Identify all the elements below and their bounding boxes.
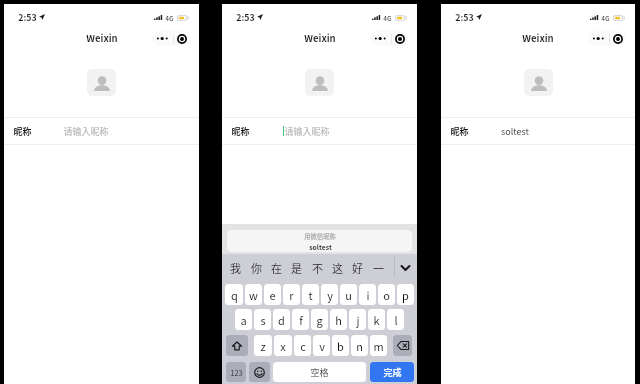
staticText: v [319, 338, 325, 354]
button[interactable]: f [292, 309, 309, 330]
button[interactable]: Backspace [393, 335, 412, 356]
button[interactable]: m [370, 335, 387, 356]
staticText: r [289, 287, 294, 303]
button[interactable]: l [387, 309, 404, 330]
button[interactable]: 123 [226, 362, 246, 382]
button[interactable]: i [359, 284, 376, 305]
staticText: 完成 [383, 366, 402, 379]
staticText: p [402, 287, 409, 303]
button[interactable]: u [340, 284, 357, 305]
button[interactable]: 你 [246, 255, 266, 280]
button[interactable]: g [311, 309, 328, 330]
staticText: 你 [251, 260, 262, 276]
staticText: a [240, 312, 247, 328]
staticText: Weixin [522, 31, 554, 45]
staticText: n [356, 338, 363, 354]
button[interactable]: Avatar [524, 69, 553, 96]
button[interactable]: b [332, 335, 349, 356]
staticText: j [356, 312, 360, 328]
button[interactable]: 用微信昵称 [227, 230, 412, 252]
button[interactable]: e [264, 284, 281, 305]
staticText: g [316, 312, 323, 328]
button[interactable]: k [368, 309, 385, 330]
button[interactable]: Avatar [87, 69, 116, 96]
staticText: w [249, 287, 258, 303]
staticText: 这 [332, 260, 343, 276]
button[interactable]: z [254, 335, 272, 356]
staticText: 2:53 [455, 11, 474, 24]
button[interactable]: c [294, 335, 311, 356]
staticText: z [260, 338, 266, 354]
button[interactable]: 空格 [273, 362, 366, 382]
staticText: d [278, 312, 285, 328]
button[interactable]: 这 [327, 255, 347, 280]
button[interactable]: Shift [226, 335, 248, 356]
button[interactable]: r [283, 284, 300, 305]
button[interactable]: s [254, 309, 271, 330]
button[interactable]: n [351, 335, 368, 356]
staticText: 用微信昵称 [304, 232, 336, 241]
button[interactable]: 一 [368, 255, 388, 280]
staticText: 昵称 [231, 125, 250, 138]
staticText: f [299, 312, 303, 328]
button[interactable]: Hide keyboard [396, 255, 414, 280]
button[interactable]: q [225, 284, 243, 305]
button[interactable]: x [274, 335, 292, 356]
button[interactable]: y [321, 284, 338, 305]
staticText: u [345, 287, 352, 303]
staticText: 2:53 [18, 11, 37, 24]
staticText: 我 [230, 260, 241, 276]
button[interactable]: 昵称 [4, 118, 199, 144]
button[interactable]: v [313, 335, 330, 356]
staticText: 请输入昵称 [284, 125, 330, 138]
button[interactable]: Menu and Close [152, 31, 190, 46]
staticText: t [308, 287, 313, 303]
staticText: 好 [352, 260, 363, 276]
button[interactable]: d [273, 309, 290, 330]
button[interactable]: Menu and Close [370, 31, 408, 46]
button[interactable]: 昵称 [441, 118, 635, 144]
button[interactable]: Avatar [305, 69, 334, 96]
button[interactable]: w [245, 284, 262, 305]
staticText: 123 [230, 367, 243, 378]
button[interactable]: p [397, 284, 414, 305]
button[interactable]: 是 [286, 255, 306, 280]
staticText: 昵称 [13, 125, 32, 138]
staticText: h [335, 312, 342, 328]
staticText: c [300, 338, 306, 354]
staticText: 一 [373, 260, 384, 276]
staticText: i [366, 287, 370, 303]
staticText: 是 [291, 260, 302, 276]
button[interactable]: t [302, 284, 319, 305]
staticText: x [280, 338, 286, 354]
staticText: s [260, 312, 266, 328]
button[interactable]: 好 [347, 255, 367, 280]
staticText: 2:53 [236, 11, 255, 24]
button[interactable]: Menu and Close [588, 31, 626, 46]
button[interactable]: 我 [225, 255, 245, 280]
staticText: 空格 [310, 366, 329, 379]
button[interactable]: 完成 [370, 362, 414, 382]
staticText: 不 [312, 260, 323, 276]
staticText: 4G [383, 13, 392, 22]
button[interactable]: 不 [307, 255, 327, 280]
button[interactable]: Emoji [249, 362, 270, 382]
button[interactable]: h [330, 309, 347, 330]
staticText: k [373, 312, 380, 328]
button[interactable]: 昵称 [222, 118, 417, 144]
staticText: Weixin [86, 31, 118, 45]
staticText: e [269, 287, 276, 303]
button[interactable]: j [349, 309, 366, 330]
button[interactable]: o [378, 284, 395, 305]
staticText: o [383, 287, 390, 303]
staticText: 4G [165, 13, 174, 22]
button[interactable]: 在 [266, 255, 286, 280]
button[interactable]: a [235, 309, 252, 330]
staticText: Weixin [304, 31, 336, 45]
staticText: l [394, 312, 398, 328]
staticText: 4G [601, 13, 610, 22]
staticText: 昵称 [450, 125, 469, 138]
staticText: 请输入昵称 [63, 125, 109, 138]
